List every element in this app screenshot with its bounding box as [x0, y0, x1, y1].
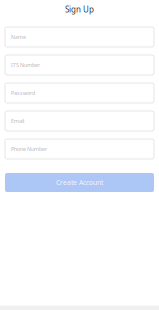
staticText: Name [11, 33, 26, 41]
staticText: Sign Up [65, 4, 94, 15]
staticText: Create Account [56, 178, 103, 187]
staticText: Phone Number [11, 145, 47, 153]
button[interactable]: ITS Number [5, 55, 154, 75]
button[interactable]: Create Account [5, 173, 154, 192]
staticText: Password [11, 89, 35, 97]
staticText: ITS Number [11, 61, 40, 69]
button[interactable]: Password [5, 83, 154, 103]
button[interactable]: Email [5, 111, 154, 131]
button[interactable]: Phone Number [5, 139, 154, 159]
staticText: Email [11, 117, 24, 125]
button[interactable]: Name [5, 27, 154, 47]
